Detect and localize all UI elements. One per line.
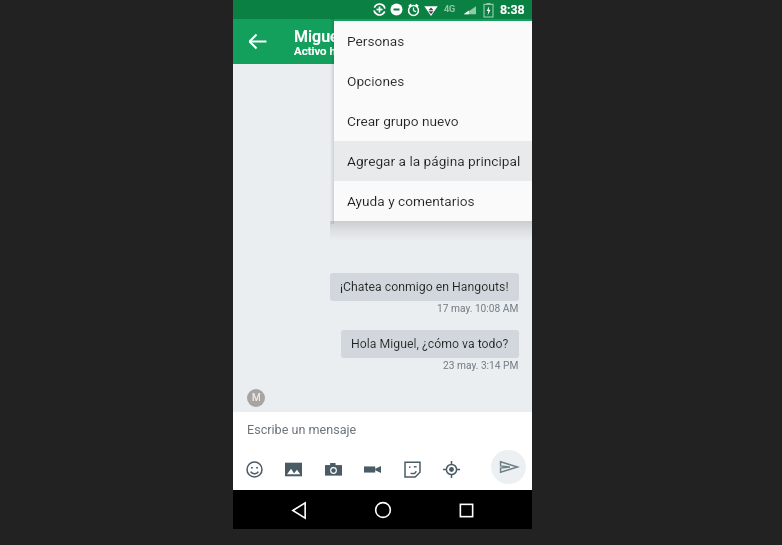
button[interactable]: Opciones <box>334 61 532 101</box>
staticText: 23 may. 3:14 PM <box>443 360 519 372</box>
staticText: 17 may. 10:08 AM <box>437 303 519 315</box>
button[interactable]: Hola Miguel, ¿cómo va todo? <box>341 330 519 358</box>
staticText: Personas <box>347 33 405 49</box>
button[interactable]: Miguel avatar <box>247 389 265 407</box>
button[interactable]: Recents <box>449 493 483 527</box>
button[interactable]: Back <box>282 493 316 527</box>
button[interactable]: Home <box>366 493 400 527</box>
staticText: Agregar a la página principal <box>347 153 521 169</box>
button[interactable]: Emoji <box>245 460 263 478</box>
button[interactable]: Sticker <box>403 460 421 478</box>
button[interactable]: Crear grupo nuevo <box>334 101 532 141</box>
staticText: Escribe un mensaje <box>247 422 357 437</box>
button[interactable]: Agregar a la página principal <box>334 141 532 181</box>
staticText: Opciones <box>347 73 405 89</box>
button[interactable]: Location <box>442 460 460 478</box>
staticText: Hola Miguel, ¿cómo va todo? <box>351 337 509 351</box>
staticText: ¡Chatea conmigo en Hangouts! <box>340 280 509 294</box>
button[interactable]: Personas <box>334 21 532 61</box>
button[interactable]: Image <box>284 460 302 478</box>
button[interactable]: Camera <box>324 460 342 478</box>
button[interactable]: Back <box>233 19 279 64</box>
button[interactable]: ¡Chatea conmigo en Hangouts! <box>330 273 519 301</box>
staticText: Ayuda y comentarios <box>347 193 475 209</box>
staticText: M <box>252 392 261 404</box>
button[interactable]: Ayuda y comentarios <box>334 181 532 221</box>
button[interactable]: Video <box>363 460 381 478</box>
button[interactable]: Send <box>491 450 526 484</box>
staticText: Miguel <box>294 27 343 46</box>
staticText: Crear grupo nuevo <box>347 113 459 129</box>
staticText: Activo hace <box>294 44 355 57</box>
staticText: 4G <box>444 4 456 15</box>
staticText: 8:38 <box>500 2 525 17</box>
